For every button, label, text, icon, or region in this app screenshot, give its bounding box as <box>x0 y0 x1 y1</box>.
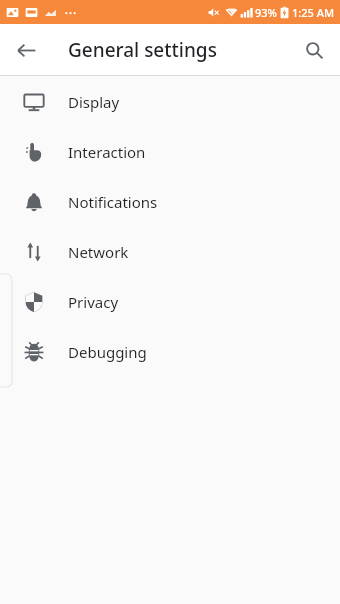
button[interactable]: Interaction <box>0 127 340 177</box>
staticText: 1:25 AM <box>292 5 335 20</box>
staticText: Network <box>68 242 129 262</box>
button[interactable]: Display <box>0 77 340 127</box>
staticText: Notifications <box>68 192 158 212</box>
staticText: Debugging <box>68 342 147 362</box>
staticText: Interaction <box>68 142 146 162</box>
button[interactable]: Search <box>294 30 334 70</box>
staticText: General settings <box>68 37 217 63</box>
button[interactable]: Notifications <box>0 177 340 227</box>
staticText: Privacy <box>68 292 119 312</box>
button[interactable]: Privacy <box>0 277 340 327</box>
button[interactable]: Network <box>0 227 340 277</box>
staticText: 93% <box>255 5 277 20</box>
button[interactable]: Debugging <box>0 327 340 377</box>
staticText: Display <box>68 92 120 112</box>
button[interactable]: Back <box>6 30 46 70</box>
